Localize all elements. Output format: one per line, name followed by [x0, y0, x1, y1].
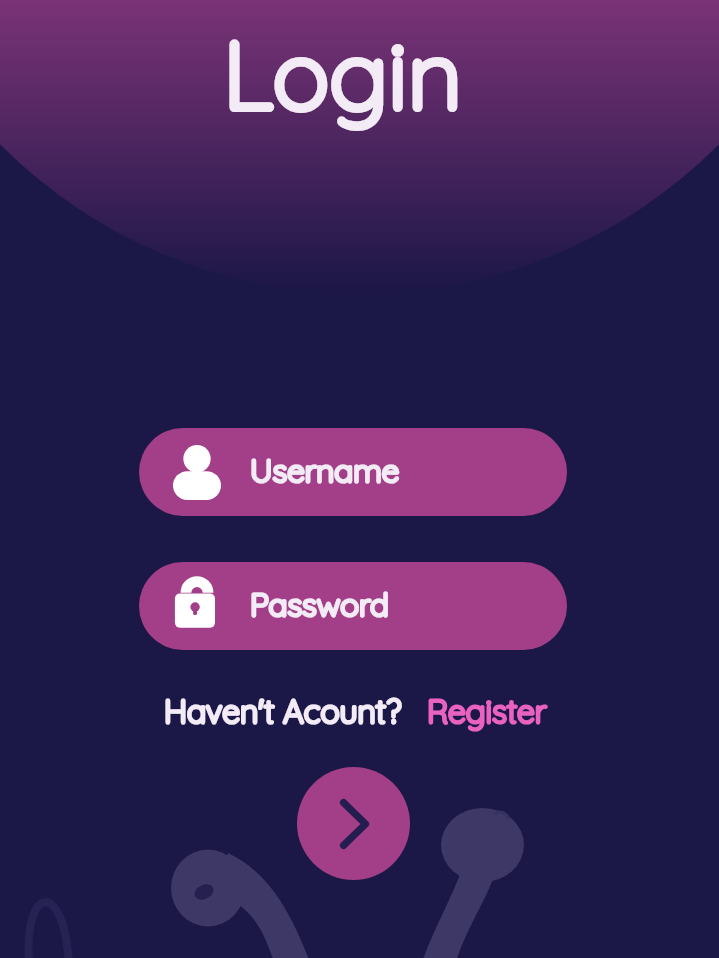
staticText: Haven't Acount? — [164, 691, 401, 731]
staticText: Password — [250, 584, 389, 623]
staticText: Register — [427, 691, 547, 731]
button[interactable]: Continue — [297, 767, 410, 880]
button[interactable]: Password — [139, 562, 567, 650]
staticText: Username — [250, 450, 400, 489]
staticText: Haven't Acount? — [164, 691, 401, 731]
staticText: Register — [427, 691, 547, 731]
staticText: Login — [223, 14, 463, 133]
button[interactable]: Username — [139, 428, 567, 516]
button[interactable]: Register — [427, 691, 547, 731]
staticText: Password — [250, 584, 389, 623]
staticText: Username — [250, 450, 400, 489]
staticText: Login — [223, 14, 463, 133]
